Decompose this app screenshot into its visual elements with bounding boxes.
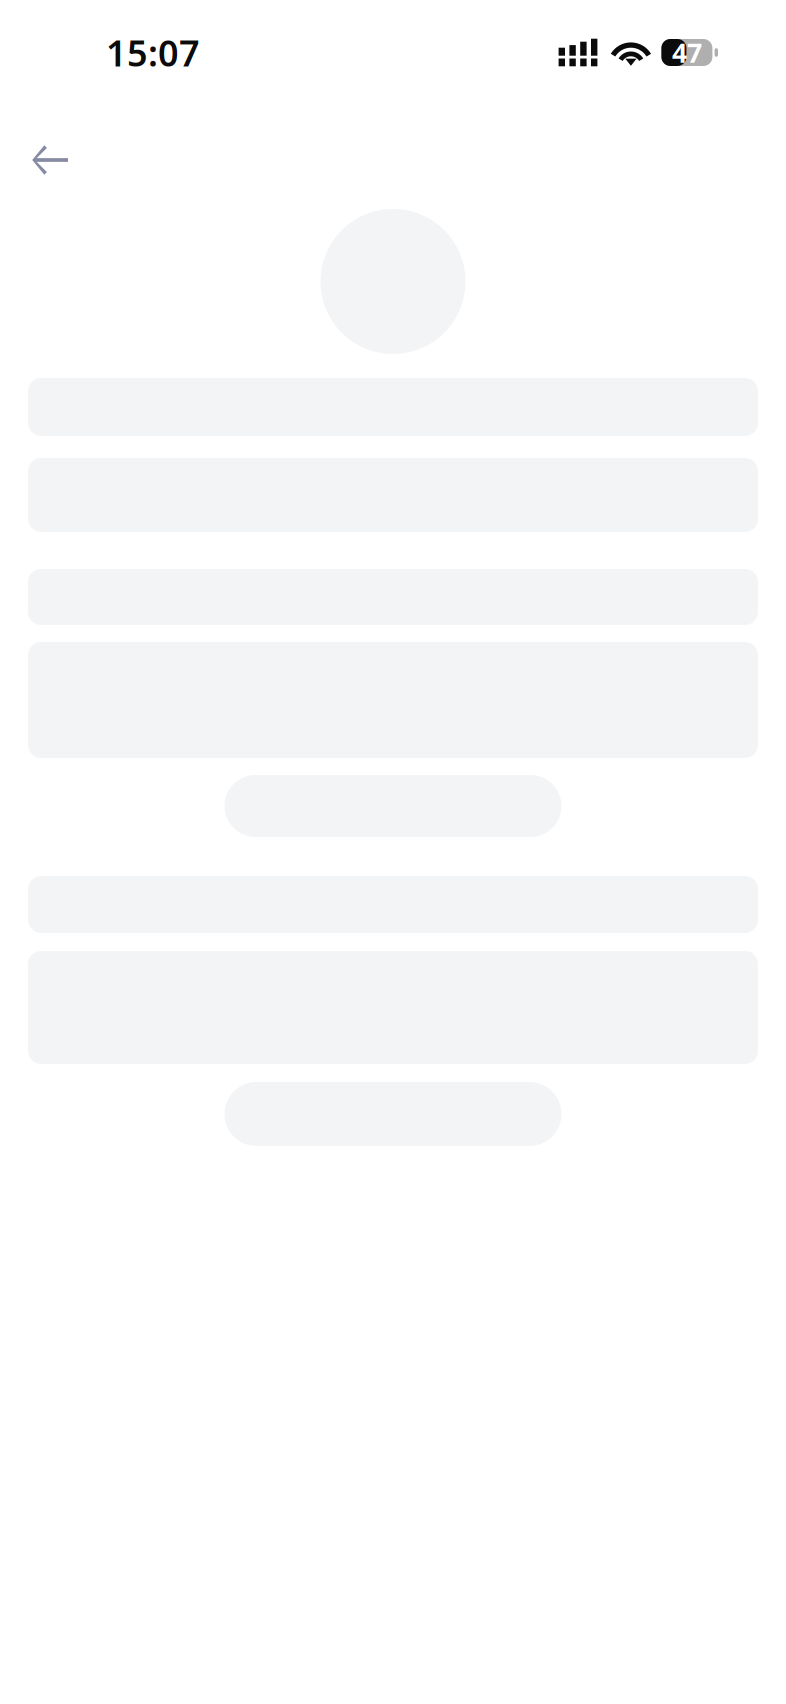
button[interactable]: Back: [0, 127, 91, 187]
staticText: 47: [672, 35, 702, 70]
staticText: 15:07: [106, 29, 200, 76]
